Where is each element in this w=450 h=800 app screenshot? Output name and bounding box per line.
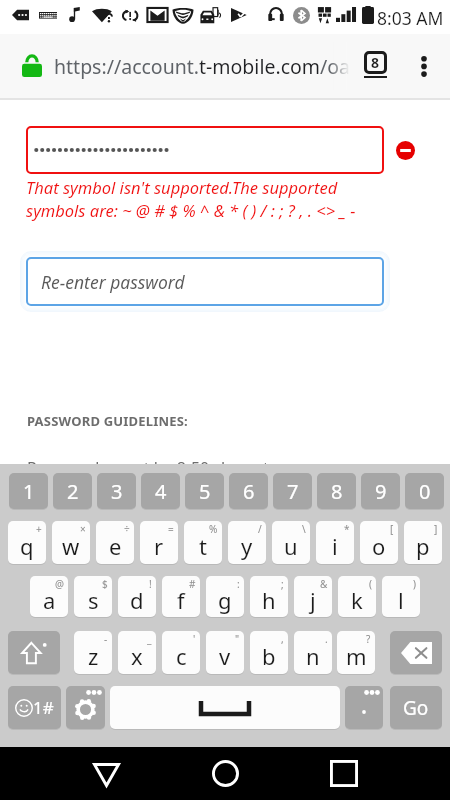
button[interactable]: q — [8, 521, 46, 564]
staticText: 8 — [331, 478, 343, 505]
button[interactable]: c — [162, 631, 200, 674]
button[interactable]: b — [250, 631, 288, 674]
button[interactable]: l — [382, 576, 420, 617]
staticText: # — [189, 577, 196, 591]
button[interactable]: f — [162, 576, 200, 617]
staticText: 7 — [287, 478, 299, 505]
staticText: x — [131, 641, 143, 671]
button[interactable]: 3 — [97, 473, 136, 509]
button[interactable]: u — [272, 521, 310, 564]
button[interactable]: z — [74, 631, 112, 674]
staticText: q — [20, 531, 34, 561]
button[interactable]: p — [404, 521, 442, 564]
button[interactable]: 4 — [141, 473, 180, 509]
button[interactable]: y — [228, 521, 266, 564]
button[interactable]: Re-enter password — [26, 257, 384, 306]
button[interactable]: 6 — [229, 473, 268, 509]
button[interactable]: Recent apps — [304, 747, 384, 800]
staticText: × — [80, 522, 86, 536]
staticText: ? — [366, 632, 371, 646]
button[interactable]: t — [184, 521, 222, 564]
staticText: y — [241, 531, 253, 561]
staticText: i — [332, 531, 338, 561]
button[interactable]: i — [316, 521, 354, 564]
button[interactable]: Backspace — [390, 631, 442, 674]
button[interactable]: https://account.t-mobile.com/oauth — [54, 42, 350, 90]
staticText: + — [36, 522, 42, 536]
staticText: c — [176, 641, 187, 671]
button[interactable]: n — [294, 631, 332, 674]
button[interactable]: s — [74, 576, 112, 617]
staticText: j — [310, 585, 316, 615]
staticText: 1# — [33, 696, 54, 719]
staticText: n — [306, 641, 320, 671]
button[interactable]: 8 — [317, 473, 356, 509]
button[interactable]: Go — [390, 686, 442, 729]
button[interactable]: Keyboard settings — [66, 686, 105, 729]
staticText: v — [219, 641, 231, 671]
button[interactable]: 2 — [53, 473, 92, 509]
staticText: Passwords must be 8-50 characters — [27, 457, 292, 479]
button[interactable]: x — [118, 631, 156, 674]
staticText: 3 — [111, 478, 123, 505]
staticText: $ — [102, 577, 108, 591]
button[interactable]: 7 — [273, 473, 312, 509]
staticText: ; — [281, 577, 284, 591]
staticText: / — [258, 522, 262, 536]
button[interactable]: w — [52, 521, 90, 564]
staticText: " — [235, 632, 240, 646]
button[interactable]: Period — [345, 686, 383, 729]
staticText: , — [281, 632, 284, 646]
staticText: 5 — [199, 478, 211, 505]
staticText: s — [88, 585, 99, 615]
staticText: e — [109, 531, 122, 561]
button[interactable]: Emoji and symbols — [8, 686, 61, 729]
staticText: 2 — [67, 478, 79, 505]
staticText: h — [262, 585, 276, 615]
staticText: ) — [413, 577, 416, 591]
button[interactable]: a — [30, 576, 68, 617]
button[interactable]: g — [206, 576, 244, 617]
button[interactable]: Switch tabs, 8 open — [358, 46, 394, 86]
button[interactable]: r — [140, 521, 178, 564]
button[interactable]: More options — [406, 48, 442, 84]
button[interactable] — [26, 126, 384, 174]
staticText: l — [398, 585, 404, 615]
button[interactable]: Shift — [8, 631, 60, 674]
button[interactable]: j — [294, 576, 332, 617]
button[interactable]: Back — [66, 747, 146, 800]
button[interactable]: Space — [110, 686, 340, 729]
button[interactable]: m — [337, 631, 375, 674]
staticText: d — [130, 585, 144, 615]
staticText: @ — [55, 577, 64, 591]
button[interactable]: 5 — [185, 473, 224, 509]
staticText: ( — [369, 577, 372, 591]
button[interactable]: 0 — [405, 473, 444, 509]
staticText: 4 — [155, 478, 167, 505]
button[interactable]: Home — [185, 747, 265, 800]
button[interactable]: k — [338, 576, 376, 617]
staticText: z — [88, 641, 99, 671]
staticText: \ — [302, 522, 306, 536]
button[interactable]: v — [206, 631, 244, 674]
staticText: - — [104, 632, 108, 646]
button[interactable]: e — [96, 521, 134, 564]
button[interactable]: h — [250, 576, 288, 617]
button[interactable]: d — [118, 576, 156, 617]
staticText: a — [43, 585, 56, 615]
button[interactable]: Site information — [14, 48, 50, 84]
staticText: p — [416, 531, 430, 561]
staticText: u — [284, 531, 298, 561]
staticText: 0 — [419, 478, 431, 505]
button[interactable]: 9 — [361, 473, 400, 509]
button[interactable]: o — [360, 521, 398, 564]
staticText: ÷ — [124, 522, 130, 536]
staticText: 1 — [23, 478, 35, 505]
staticText: m — [346, 641, 367, 671]
staticText: ! — [149, 577, 152, 591]
staticText: 9 — [375, 478, 387, 505]
staticText: Re-enter password — [41, 270, 185, 294]
button[interactable]: 1 — [9, 473, 48, 509]
staticText: https://account.t-mobile.com/oauth — [54, 53, 350, 80]
staticText: 8:03 AM — [377, 6, 444, 30]
